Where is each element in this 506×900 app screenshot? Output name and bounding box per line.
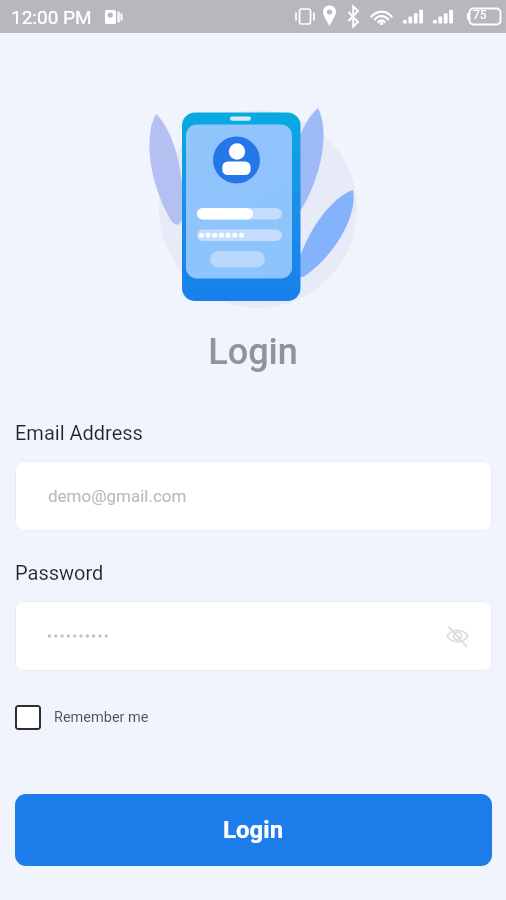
staticText: Email Address: [15, 421, 143, 444]
staticText: Login: [0, 331, 506, 373]
button[interactable]: Remember me: [13, 700, 149, 734]
button[interactable]: Show password: [15, 601, 492, 671]
button[interactable]: demo@gmail.com: [15, 461, 492, 531]
button[interactable]: Show password: [437, 616, 477, 656]
staticText: demo@gmail.com: [48, 486, 187, 506]
staticText: Login: [223, 816, 284, 844]
button[interactable]: Login: [15, 794, 492, 866]
staticText: Remember me: [54, 709, 149, 726]
staticText: Password: [15, 561, 104, 584]
staticText: 75: [473, 8, 487, 22]
staticText: 12:00 PM: [11, 6, 92, 28]
